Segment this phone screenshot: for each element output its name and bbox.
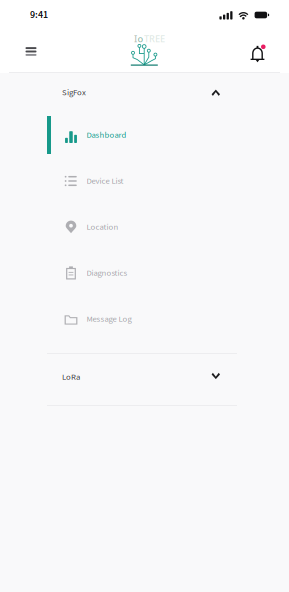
button[interactable]: LoRa	[47, 359, 237, 395]
staticText: Dashboard	[86, 129, 126, 141]
button[interactable]: Diagnostics	[47, 250, 237, 296]
staticText: o	[137, 32, 143, 45]
staticText: Diagnostics	[86, 267, 127, 279]
staticText: TREE	[144, 32, 165, 45]
button[interactable]: Menu	[18, 38, 44, 64]
button[interactable]: SigFox	[47, 74, 237, 110]
staticText: LoRa	[62, 371, 80, 383]
staticText: 9:41	[30, 8, 48, 22]
staticText: SigFox	[62, 86, 86, 99]
button[interactable]: Device List	[47, 158, 237, 204]
button[interactable]: Location	[47, 204, 237, 250]
staticText: I	[134, 32, 137, 45]
button[interactable]: Dashboard	[47, 112, 237, 158]
button[interactable]: Notifications	[245, 38, 271, 64]
button[interactable]: Message Log	[47, 296, 237, 342]
staticText: Location	[86, 221, 118, 233]
staticText: Message Log	[86, 313, 131, 325]
staticText: Device List	[86, 175, 123, 187]
